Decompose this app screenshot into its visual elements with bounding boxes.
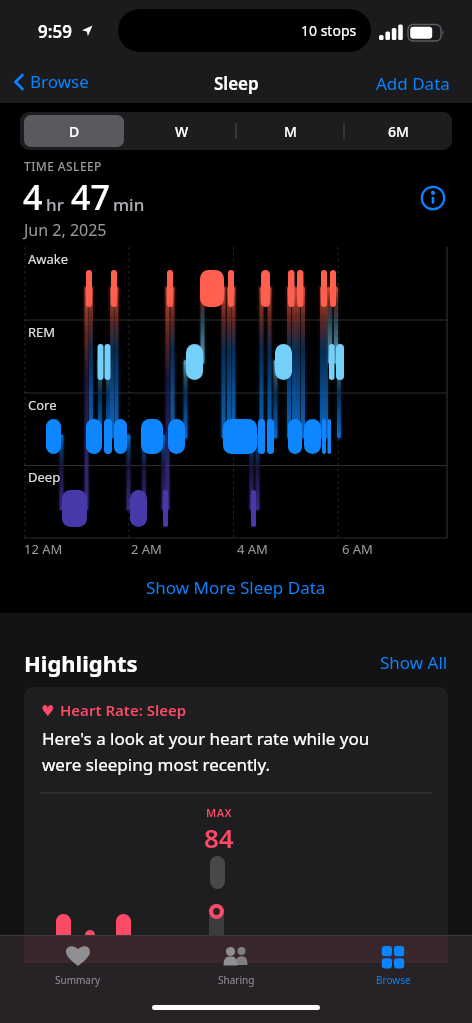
button[interactable]: W (128, 112, 236, 150)
staticText: Show More Sleep Data (146, 576, 326, 599)
staticText: D (69, 122, 80, 141)
button[interactable]: Sharing (186, 941, 286, 993)
staticText: min (113, 193, 145, 216)
staticText: 4 (23, 174, 43, 220)
staticText: 10 stops (301, 21, 357, 40)
button[interactable]: 6M (344, 112, 452, 150)
staticText: Heart Rate: Sleep (60, 700, 187, 720)
staticText: 9:59 (38, 20, 72, 43)
button[interactable] (418, 183, 448, 213)
button[interactable]: Add Data (376, 72, 450, 95)
staticText: M (284, 122, 297, 141)
staticText: Add Data (376, 72, 450, 95)
staticText: 6 AM (342, 540, 373, 558)
button[interactable]: D (20, 112, 128, 150)
staticText: Core (28, 396, 57, 414)
staticText: Sleep (214, 72, 259, 95)
staticText: 2 AM (131, 540, 162, 558)
staticText: Sharing (218, 973, 255, 987)
button[interactable]: Browse (12, 70, 89, 93)
staticText: REM (28, 323, 56, 341)
staticText: Browse (376, 973, 411, 987)
staticText: MAX (206, 805, 233, 820)
staticText: 4 AM (237, 540, 268, 558)
staticText: 12 AM (24, 540, 63, 558)
button[interactable]: Browse (343, 941, 443, 993)
staticText: Browse (30, 70, 89, 93)
staticText: hr (46, 193, 64, 216)
staticText: Deep (28, 468, 61, 486)
button[interactable]: M (236, 112, 344, 150)
staticText: Highlights (24, 648, 138, 678)
staticText: 47 (71, 174, 110, 220)
button[interactable]: Show More Sleep Data (146, 576, 326, 599)
staticText: 84 (204, 820, 234, 855)
staticText: Awake (28, 250, 69, 268)
staticText: W (175, 122, 189, 141)
button[interactable]: ♥ (24, 687, 448, 977)
staticText: Jun 2, 2025 (24, 219, 107, 241)
staticText: Summary (55, 973, 101, 987)
button[interactable]: Summary (28, 941, 128, 993)
staticText: Here's a look at your heart rate while y… (42, 727, 370, 776)
button[interactable]: Show All (380, 648, 448, 671)
staticText: Show All (380, 651, 448, 674)
staticText: 6M (388, 122, 409, 141)
staticText: ♥ (41, 702, 55, 719)
staticText: TIME ASLEEP (24, 158, 102, 174)
